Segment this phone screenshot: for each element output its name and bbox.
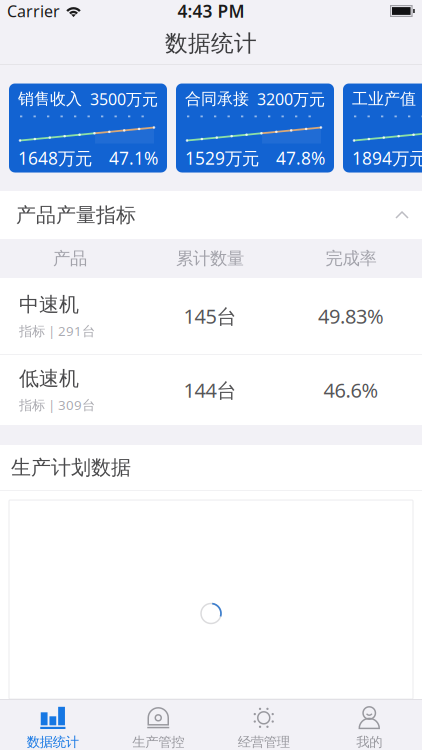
staticText: 生产管控 [132,734,184,750]
staticText: 完成率 [325,248,376,269]
staticText: 47.8% [276,146,325,169]
button[interactable]: 销售收入 [9,83,167,172]
staticText: 指标 | 309台 [19,396,95,414]
button[interactable]: 工业产值 [343,83,422,172]
staticText: 3500万元 [90,88,158,110]
button[interactable]: 产品产量指标 [0,191,422,239]
button[interactable]: 合同承接 [176,83,334,172]
staticText: 产品 [53,248,87,269]
staticText: 中速机 [19,292,79,317]
staticText: 我的 [356,734,382,750]
staticText: 1648万元 [18,146,92,169]
staticText: 经营管理 [238,734,290,750]
staticText: 销售收入 [18,89,82,109]
staticText: 145台 [183,303,236,329]
staticText: 46.6% [323,377,378,403]
staticText: 1529万元 [185,146,259,169]
staticText: 1894万元 [352,146,422,169]
staticText: 产品产量指标 [16,203,136,227]
staticText: Carrier [7,0,60,22]
button[interactable]: 我的 [316,699,422,750]
staticText: 指标 | 291台 [19,322,95,340]
staticText: 49.83% [318,303,384,329]
staticText: 低速机 [19,366,79,391]
button[interactable]: 数据统计 [0,699,105,750]
button[interactable]: 生产管控 [105,699,211,750]
staticText: 47.1% [109,146,158,169]
staticText: 合同承接 [185,89,249,109]
staticText: 3200万元 [257,88,325,110]
staticText: 生产计划数据 [11,455,131,480]
staticText: 数据统计 [165,30,257,57]
staticText: 工业产值 [352,89,416,109]
staticText: 数据统计 [27,734,79,750]
staticText: 144台 [183,377,236,403]
staticText: 4:43 PM [177,0,244,22]
button[interactable]: 经营管理 [211,699,316,750]
staticText: 累计数量 [176,248,244,269]
